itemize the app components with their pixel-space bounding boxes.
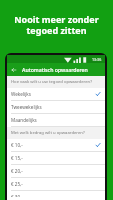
staticText: € 20,- [11, 168, 95, 174]
button[interactable]: Maandelijks [7, 114, 105, 127]
staticText: € 10,- [11, 142, 95, 148]
staticText: 13:36 [92, 57, 102, 62]
button[interactable]: € 30,- [7, 191, 105, 200]
button[interactable]: € 15,- [7, 152, 105, 165]
button[interactable]: Wekelijks [7, 88, 105, 101]
staticText: Nooit meer zonder tegoed zitten [0, 13, 113, 37]
staticText: Automatisch opwaarderen [22, 66, 88, 73]
button[interactable]: € 10,- [7, 139, 105, 152]
staticText: Met welk bedrag wilt u opwaarderen? [11, 130, 85, 136]
staticText: Hoe vaak wilt u uw tegoed opwaarderen? [11, 79, 92, 85]
button[interactable]: Tweewekelijks [7, 101, 105, 114]
staticText: Maandelijks [11, 117, 95, 123]
staticText: € 15,- [11, 155, 95, 161]
button[interactable]: € 25,- [7, 178, 105, 191]
button[interactable]: € 20,- [7, 165, 105, 178]
button[interactable]: Back [10, 66, 18, 74]
staticText: Tweewekelijks [11, 104, 95, 110]
staticText: Wekelijks [11, 91, 95, 97]
staticText: € 30,- [11, 194, 95, 197]
staticText: € 25,- [11, 181, 95, 187]
